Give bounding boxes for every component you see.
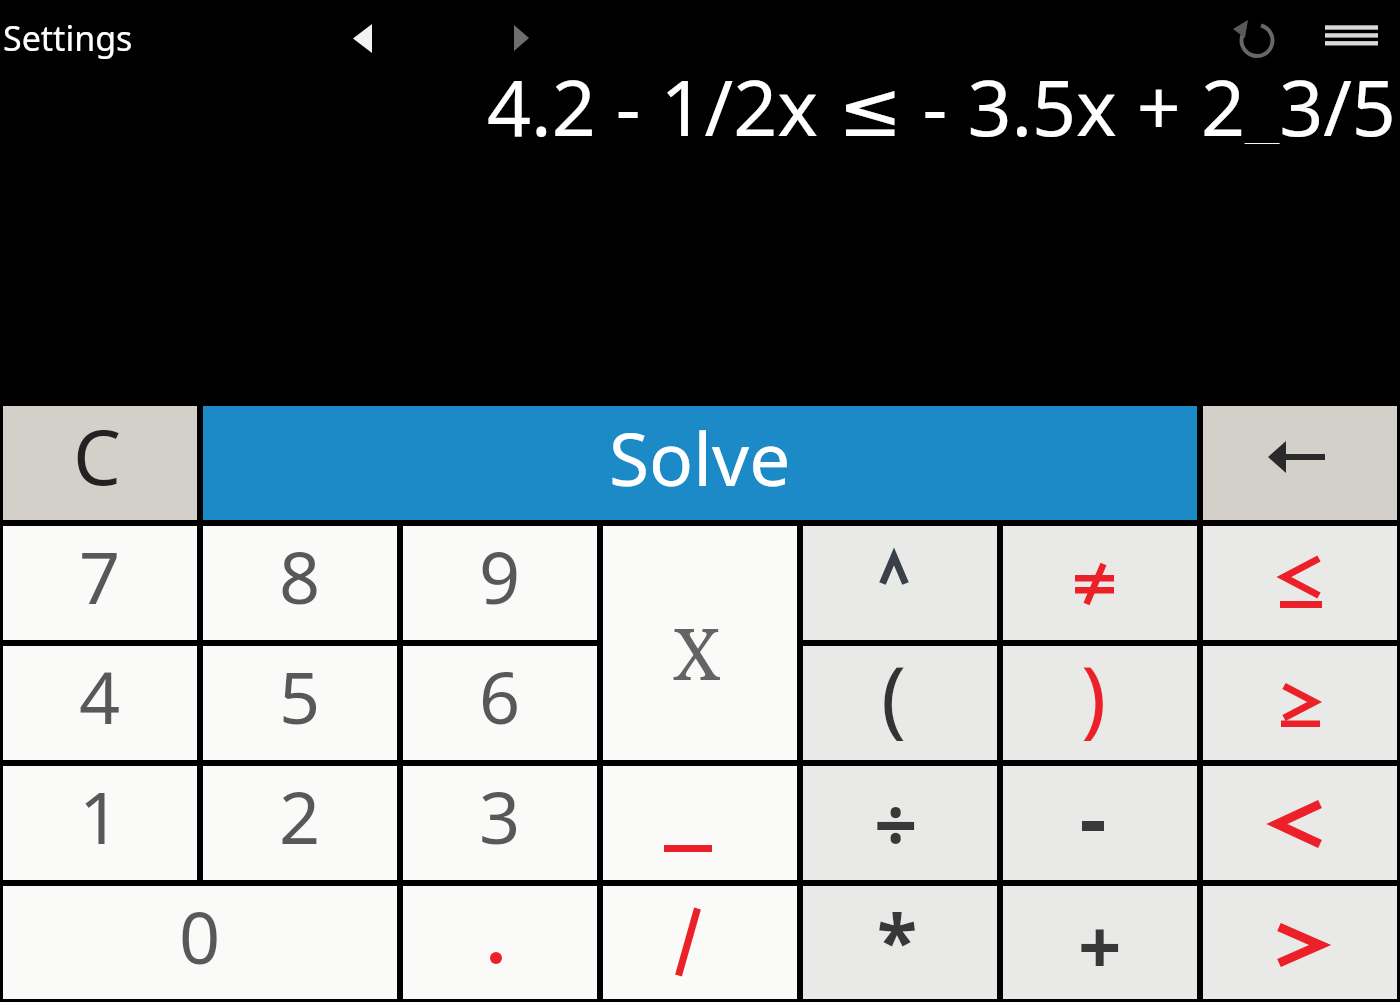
button[interactable]: + bbox=[1000, 883, 1200, 1002]
staticText: X bbox=[673, 603, 721, 701]
staticText: 5 bbox=[279, 647, 321, 745]
button[interactable]: 6 bbox=[400, 643, 600, 763]
button[interactable]: 7 bbox=[0, 523, 200, 643]
staticText: Solve bbox=[609, 408, 791, 507]
staticText: 0 bbox=[179, 887, 221, 985]
staticText: * bbox=[877, 889, 918, 990]
button[interactable]: 5 bbox=[200, 643, 400, 763]
staticText: + bbox=[1078, 893, 1122, 997]
button[interactable] bbox=[1228, 12, 1280, 64]
button[interactable]: 9 bbox=[400, 523, 600, 643]
button[interactable]: ) bbox=[1000, 643, 1200, 763]
button[interactable] bbox=[1318, 16, 1386, 56]
button[interactable]: 0 bbox=[0, 883, 400, 1002]
button[interactable] bbox=[800, 523, 1000, 643]
staticText: C bbox=[73, 404, 122, 508]
staticText: 4 bbox=[79, 647, 121, 745]
button[interactable] bbox=[600, 883, 800, 1002]
button[interactable] bbox=[1200, 523, 1400, 643]
staticText: ) bbox=[1081, 638, 1107, 752]
button[interactable]: 4 bbox=[0, 643, 200, 763]
button[interactable]: ( bbox=[800, 643, 1000, 763]
button[interactable]: C bbox=[0, 403, 200, 523]
button[interactable] bbox=[600, 763, 800, 883]
staticText: 7 bbox=[79, 527, 121, 625]
button[interactable]: ÷ bbox=[800, 763, 1000, 883]
staticText: 8 bbox=[279, 527, 321, 625]
button[interactable]: 3 bbox=[400, 763, 600, 883]
button[interactable] bbox=[344, 14, 384, 60]
staticText: 2 bbox=[279, 767, 321, 865]
staticText: ( bbox=[881, 638, 907, 752]
button[interactable] bbox=[1200, 403, 1400, 523]
staticText: 6 bbox=[479, 647, 521, 745]
button[interactable] bbox=[1200, 763, 1400, 883]
button[interactable]: Settings bbox=[3, 15, 133, 61]
button[interactable]: X bbox=[600, 523, 800, 763]
staticText: Settings bbox=[3, 15, 133, 61]
button[interactable] bbox=[1000, 763, 1200, 883]
button[interactable] bbox=[1000, 523, 1200, 643]
button[interactable]: Solve bbox=[200, 403, 1200, 523]
button[interactable] bbox=[1200, 643, 1400, 763]
button[interactable] bbox=[1200, 883, 1400, 1002]
staticText: 4.2 - 1/2x ≤ - 3.5x + 2_3/5 bbox=[487, 54, 1396, 144]
button[interactable]: 2 bbox=[200, 763, 400, 883]
button[interactable]: * bbox=[800, 883, 1000, 1002]
staticText: 9 bbox=[479, 527, 521, 625]
button[interactable]: 8 bbox=[200, 523, 400, 643]
button[interactable] bbox=[400, 883, 600, 1002]
staticText: ÷ bbox=[874, 771, 918, 875]
button[interactable]: 1 bbox=[0, 763, 200, 883]
button[interactable] bbox=[504, 14, 544, 60]
staticText: 3 bbox=[479, 767, 521, 865]
staticText: 1 bbox=[79, 767, 121, 865]
